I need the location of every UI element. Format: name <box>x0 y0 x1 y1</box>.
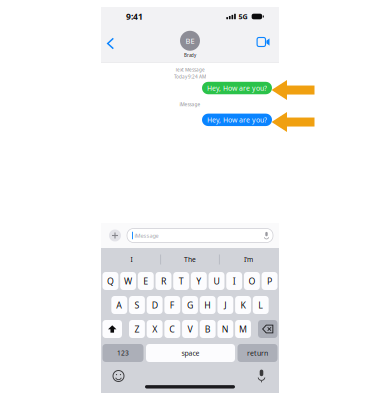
button[interactable]: Add <box>107 226 123 244</box>
staticText: BE <box>185 36 194 46</box>
button[interactable]: G <box>182 296 198 314</box>
staticText: Hey, How are you? <box>207 115 267 124</box>
staticText: return <box>247 348 268 358</box>
staticText: F <box>170 299 175 311</box>
button[interactable]: E <box>138 272 154 290</box>
button[interactable]: Back <box>101 26 117 60</box>
button[interactable]: Y <box>191 272 207 290</box>
staticText: iMessage <box>134 232 158 239</box>
staticText: G <box>187 299 193 311</box>
button[interactable]: I <box>226 272 242 290</box>
button[interactable]: H <box>200 296 216 314</box>
staticText: H <box>204 299 211 311</box>
button[interactable]: D <box>147 296 163 314</box>
staticText: 5G <box>238 12 247 21</box>
button[interactable]: C <box>164 320 180 338</box>
button[interactable]: W <box>120 272 136 290</box>
button[interactable]: M <box>235 320 251 338</box>
staticText: B <box>205 323 211 335</box>
button[interactable]: BE <box>180 29 200 57</box>
staticText: O <box>248 275 255 287</box>
staticText: W <box>124 275 132 287</box>
staticText: 123 <box>117 348 129 358</box>
button[interactable]: R <box>155 272 171 290</box>
staticText: I <box>130 255 132 264</box>
staticText: D <box>152 299 158 311</box>
staticText: J <box>224 299 226 311</box>
button[interactable]: Q <box>102 272 118 290</box>
staticText: I'm <box>244 255 253 264</box>
button[interactable]: U <box>209 272 224 290</box>
staticText: Today 9:24 AM <box>174 73 206 80</box>
button[interactable]: Z <box>129 320 145 338</box>
staticText: Brady <box>184 52 196 58</box>
staticText: Hey, How are you? <box>207 83 267 93</box>
staticText: X <box>152 323 157 335</box>
staticText: P <box>267 275 272 287</box>
button[interactable]: Shift <box>102 320 122 338</box>
button[interactable]: Delete <box>258 320 277 338</box>
button[interactable]: Emoji <box>107 367 129 385</box>
staticText: iMessage <box>179 101 200 108</box>
staticText: space <box>181 348 199 358</box>
button[interactable]: 123 <box>102 344 143 362</box>
button[interactable]: A <box>111 296 127 314</box>
staticText: C <box>169 323 175 335</box>
staticText: Z <box>134 323 139 335</box>
staticText: E <box>143 275 148 287</box>
staticText: Y <box>196 275 201 287</box>
staticText: M <box>239 323 247 335</box>
button[interactable]: S <box>129 296 145 314</box>
button[interactable]: J <box>217 296 233 314</box>
button[interactable]: The <box>161 250 219 269</box>
staticText: 9:41 <box>126 11 143 22</box>
staticText: R <box>161 275 166 287</box>
button[interactable]: K <box>235 296 251 314</box>
button[interactable]: I'm <box>220 250 277 269</box>
staticText: U <box>213 275 219 287</box>
staticText: L <box>258 299 263 311</box>
button[interactable]: return <box>237 344 277 362</box>
staticText: T <box>179 275 184 287</box>
button[interactable]: N <box>217 320 233 338</box>
staticText: A <box>116 299 122 311</box>
button[interactable]: T <box>173 272 189 290</box>
staticText: Text Message <box>175 67 205 73</box>
button[interactable]: X <box>147 320 163 338</box>
button[interactable]: P <box>262 272 277 290</box>
staticText: Q <box>107 275 114 287</box>
button[interactable]: FaceTime <box>256 26 278 60</box>
staticText: K <box>240 299 245 311</box>
staticText: N <box>222 323 229 335</box>
button[interactable]: Dictation <box>250 367 272 385</box>
button[interactable]: O <box>244 272 260 290</box>
staticText: I <box>233 275 236 287</box>
button[interactable]: B <box>200 320 216 338</box>
button[interactable]: I <box>102 250 160 269</box>
staticText: S <box>134 299 139 311</box>
staticText: The <box>184 255 196 264</box>
button[interactable]: F <box>164 296 180 314</box>
button[interactable]: L <box>253 296 269 314</box>
button[interactable]: space <box>146 344 235 362</box>
button[interactable]: V <box>182 320 198 338</box>
staticText: V <box>187 323 192 335</box>
